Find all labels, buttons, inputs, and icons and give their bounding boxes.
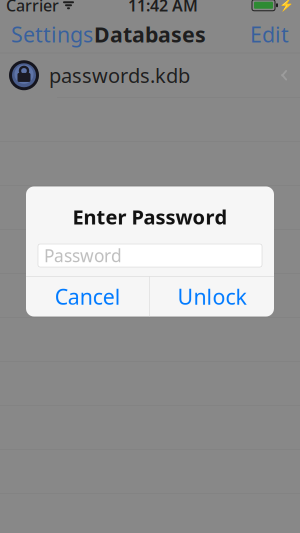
button[interactable]: passwords.kdb [0,53,300,97]
staticText: ⚡ [279,0,294,12]
staticText: Unlock [177,282,246,311]
staticText: 11:42 AM [128,0,198,16]
button[interactable]: Cancel [26,276,149,316]
staticText: Databases [94,20,206,48]
staticText: Settings [11,20,93,48]
button[interactable]: Edit [239,15,300,53]
button[interactable]: Settings [0,15,104,53]
staticText: Cancel [55,282,121,311]
staticText: Carrier [6,0,59,16]
staticText: passwords.kdb [49,62,190,89]
staticText: Password [44,244,122,267]
staticText: Edit [250,20,289,48]
button[interactable]: Unlock [150,276,274,316]
staticText: Enter Password [72,203,227,230]
